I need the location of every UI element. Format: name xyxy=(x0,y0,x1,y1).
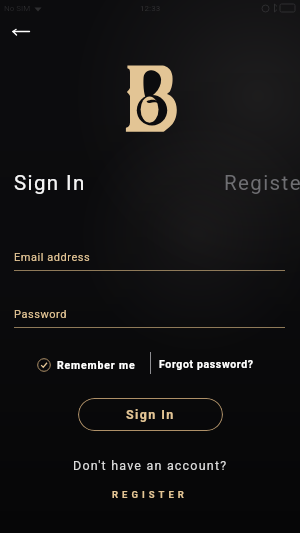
button[interactable]: REGISTER xyxy=(112,489,188,500)
staticText: Password xyxy=(14,308,67,321)
button[interactable]: Back xyxy=(6,17,36,47)
button[interactable]: Forgot password? xyxy=(159,353,254,376)
button[interactable]: Register xyxy=(224,171,300,195)
staticText: 12:33 xyxy=(140,4,161,13)
staticText: Sign In xyxy=(126,407,175,422)
button[interactable]: Sign In xyxy=(78,398,223,431)
button[interactable]: Sign In xyxy=(14,171,86,195)
staticText: Don't have an account? xyxy=(73,458,228,473)
staticText: Remember me xyxy=(57,359,136,371)
button[interactable]: Remember me xyxy=(37,353,136,376)
staticText: No SIM xyxy=(4,4,31,13)
staticText: Email address xyxy=(14,251,91,264)
